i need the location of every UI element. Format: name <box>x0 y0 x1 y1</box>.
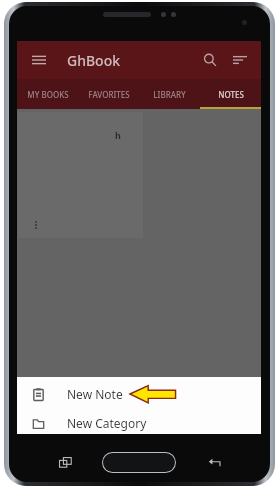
button[interactable]: NOTES <box>200 79 261 109</box>
button[interactable]: Open navigation menu <box>25 46 53 74</box>
button[interactable]: MY BOOKS <box>17 79 78 109</box>
button[interactable]: Sort <box>225 45 255 75</box>
button[interactable]: More options <box>29 218 43 232</box>
button[interactable]: LIBRARY <box>139 79 200 109</box>
button[interactable]: New Note <box>17 377 261 411</box>
staticText: LIBRARY <box>153 89 186 100</box>
staticText: h <box>115 129 121 141</box>
button[interactable]: Home <box>103 453 175 472</box>
staticText: NOTES <box>218 89 244 100</box>
staticText: New Note <box>67 386 123 402</box>
button[interactable]: Recent apps <box>54 451 76 473</box>
button[interactable]: Back <box>203 451 225 473</box>
staticText: MY BOOKS <box>27 89 69 100</box>
staticText: New Category <box>67 415 147 431</box>
staticText: GhBook <box>67 51 121 70</box>
staticText: FAVORITES <box>88 89 130 100</box>
button[interactable]: New Category <box>17 411 261 434</box>
button[interactable]: Search <box>195 45 225 75</box>
button[interactable]: FAVORITES <box>78 79 139 109</box>
